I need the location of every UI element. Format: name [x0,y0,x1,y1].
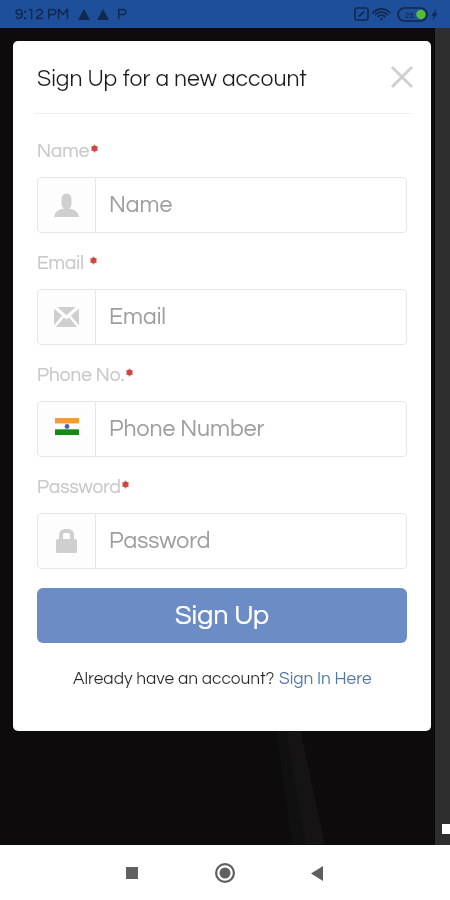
staticText: 25 [405,11,414,19]
staticText: Phone No. [37,365,125,385]
staticText: 9:12 PM [15,6,70,22]
button[interactable]: Name [37,177,407,233]
staticText: Sign Up for a new account [37,67,307,91]
button[interactable]: Home [205,853,245,893]
staticText: Email [37,253,89,273]
staticText: Password [109,529,211,553]
button[interactable]: Sign Up [37,588,407,643]
button[interactable]: Password [37,513,407,569]
button[interactable]: Email [37,289,407,345]
button[interactable]: Phone Number [37,401,407,457]
button[interactable]: Recent apps [112,853,152,893]
staticText: Sign In Here [279,670,372,688]
staticText: Sign Up [175,602,270,630]
staticText: Already have an account? [73,670,279,688]
button[interactable]: Close [384,59,419,94]
staticText: P [117,6,127,22]
button[interactable]: Already have an account? [73,670,372,688]
button[interactable]: Back [297,853,337,893]
staticText: Email [109,305,167,329]
staticText: Name [37,141,90,161]
staticText: Name [109,193,173,217]
staticText: Password [37,477,121,497]
staticText: Phone Number [109,417,265,441]
